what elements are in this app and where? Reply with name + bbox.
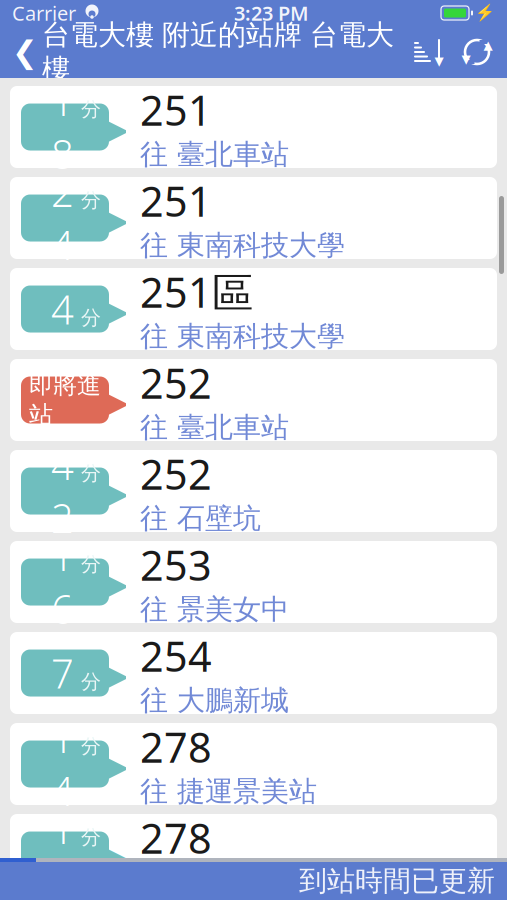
staticText: 往 — [140, 228, 168, 263]
staticText: 10 — [51, 802, 74, 900]
staticText: 分 — [81, 670, 101, 694]
button[interactable]: 即將進站 — [10, 359, 497, 441]
staticText: 278 — [140, 810, 212, 865]
staticText: ⚡ — [475, 4, 495, 22]
staticText: 大鵬新城 — [177, 683, 289, 718]
button[interactable]: 4 — [10, 268, 497, 350]
staticText: 254 — [140, 628, 212, 683]
staticText: 3:23 PM — [234, 0, 309, 26]
staticText: ▶ — [88, 370, 129, 430]
button[interactable]: 7 — [10, 632, 497, 714]
staticText: 24 — [51, 165, 74, 271]
staticText: 278 — [140, 719, 212, 774]
staticText: 到站時間已更新 — [299, 864, 495, 898]
staticText: 臺北車站 — [177, 410, 289, 445]
staticText: 臺北車站 — [177, 137, 289, 172]
staticText: 石壁坑 — [177, 501, 261, 536]
staticText: 往 — [140, 683, 168, 718]
staticText: 251 — [140, 82, 212, 137]
staticText: ▲ — [483, 38, 492, 52]
button[interactable]: 14 — [10, 723, 497, 805]
staticText: 往 — [140, 319, 168, 354]
staticText: ▶ — [88, 825, 129, 885]
staticText: 14 — [51, 711, 74, 817]
staticText: 4 — [51, 282, 74, 335]
staticText: 分 — [81, 734, 101, 759]
staticText: 分 — [81, 97, 101, 122]
staticText: 分 — [81, 552, 101, 577]
staticText: 景美女中 — [177, 592, 289, 627]
staticText: 252 — [140, 446, 212, 501]
button[interactable]: 16 — [10, 541, 497, 623]
staticText: 往 — [140, 592, 168, 627]
staticText: ▶ — [88, 552, 129, 612]
staticText: 分 — [81, 306, 101, 330]
staticText: 分 — [81, 188, 101, 213]
staticText: ▶ — [88, 643, 129, 703]
button[interactable]: ❮ — [0, 14, 394, 90]
staticText: 台電大樓 附近的站牌 台電大樓 — [42, 18, 394, 86]
staticText: 16 — [51, 529, 74, 635]
staticText: 18 — [51, 74, 74, 180]
button[interactable]: Sort — [411, 37, 447, 67]
staticText: 251區 — [140, 264, 253, 319]
staticText: 捷運景美站 — [177, 774, 317, 809]
staticText: 42 — [51, 438, 74, 544]
staticText: 往 — [140, 774, 168, 809]
staticText: 東南科技大學 — [177, 319, 345, 354]
staticText: ▶ — [88, 97, 129, 157]
staticText: 即將進站 — [29, 370, 101, 429]
staticText: ❮ — [12, 35, 38, 69]
staticText: 252 — [140, 355, 212, 410]
staticText: 往 — [140, 501, 168, 536]
staticText: 東南科技大學 — [177, 228, 345, 263]
staticText: 253 — [140, 537, 212, 592]
button[interactable]: 10 — [10, 814, 497, 896]
staticText: ▼ — [434, 54, 443, 68]
button[interactable]: 18 — [10, 86, 497, 168]
staticText: 往 — [140, 410, 168, 445]
staticText: 分 — [81, 461, 101, 486]
staticText: ▼ — [461, 52, 470, 66]
staticText: 分 — [81, 825, 101, 850]
staticText: Carrier — [12, 0, 76, 26]
button[interactable]: 42 — [10, 450, 497, 532]
button[interactable]: 24 — [10, 177, 497, 259]
staticText: 251 — [140, 173, 212, 228]
staticText: ▶ — [88, 188, 129, 248]
staticText: ▶ — [88, 279, 129, 339]
staticText: ▶ — [88, 461, 129, 521]
staticText: 7 — [51, 646, 74, 699]
button[interactable]: Refresh — [447, 36, 493, 68]
staticText: 往 — [140, 137, 168, 172]
staticText: ▶ — [88, 734, 129, 794]
